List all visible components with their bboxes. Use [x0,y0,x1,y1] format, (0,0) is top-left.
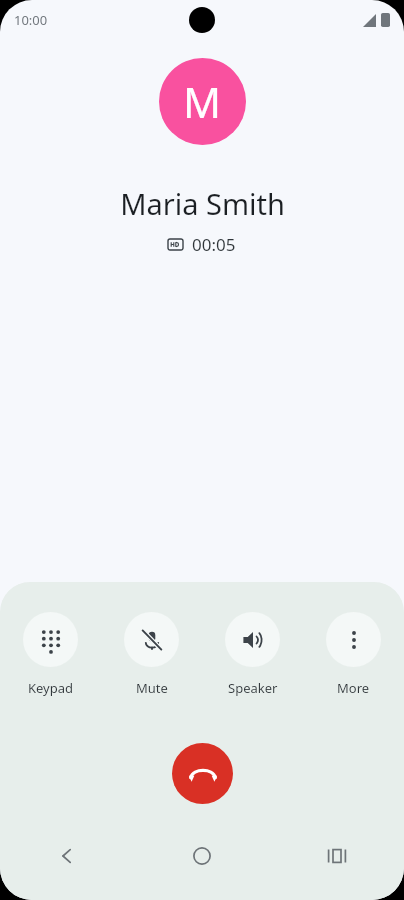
button[interactable]: Mute [101,612,202,697]
staticText: Mute [136,679,168,697]
button[interactable]: Recent apps [269,834,404,878]
staticText: Speaker [228,679,278,697]
button[interactable]: Home [134,834,269,878]
staticText: 10:00 [14,11,48,29]
staticText: More [337,679,370,697]
staticText: 00:05 [192,233,236,256]
button[interactable]: Speaker [202,612,303,697]
staticText: Maria Smith [120,184,285,223]
staticText: Keypad [28,679,74,697]
button[interactable]: More [303,612,404,697]
button[interactable]: Back [0,834,134,878]
staticText: M [183,73,222,130]
button[interactable]: End call [172,743,233,804]
button[interactable]: Keypad [0,612,101,697]
